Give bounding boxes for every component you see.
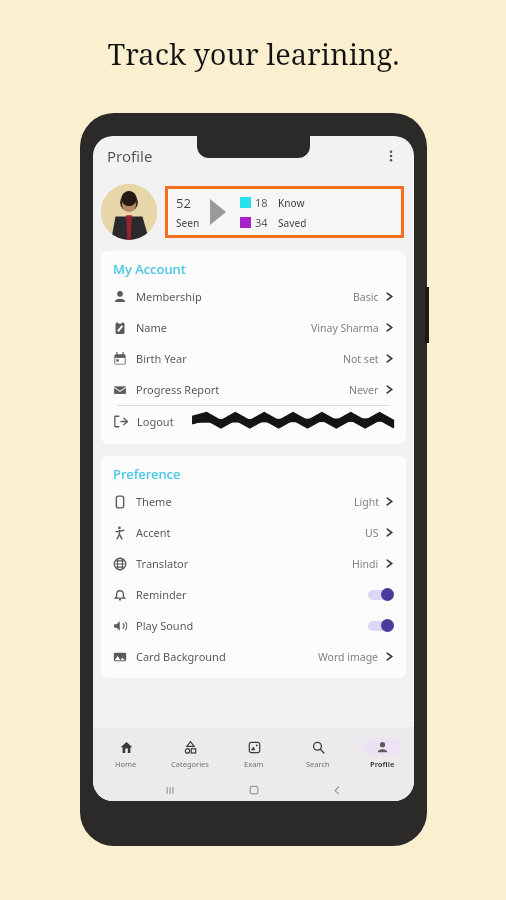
staticText: Birth Year xyxy=(136,351,187,366)
staticText: Preference xyxy=(113,465,181,483)
staticText: Name xyxy=(136,320,168,335)
staticText: Accent xyxy=(136,525,171,540)
staticText: Track your learining. xyxy=(107,34,400,73)
button[interactable]: Membership xyxy=(113,281,394,312)
staticText: Know xyxy=(278,196,305,210)
staticText: 34 xyxy=(255,215,268,230)
staticText: 18 xyxy=(255,195,268,210)
staticText: US xyxy=(365,526,379,540)
button[interactable]: More options xyxy=(378,143,404,169)
staticText: Translator xyxy=(136,556,189,571)
staticText: Play Sound xyxy=(136,618,194,633)
button[interactable]: Reminder xyxy=(113,579,394,610)
button[interactable]: Accent xyxy=(113,517,394,548)
staticText: Word image xyxy=(318,650,379,664)
button[interactable]: Translator xyxy=(113,548,394,579)
staticText: Profile xyxy=(107,146,153,166)
staticText: Exam xyxy=(244,759,264,769)
staticText: Categories xyxy=(171,759,209,769)
staticText: Card Background xyxy=(136,649,226,664)
staticText: Theme xyxy=(136,494,172,509)
button[interactable]: Profile photo xyxy=(101,184,157,240)
button[interactable]: Card Background xyxy=(113,641,394,672)
staticText: Reminder xyxy=(136,587,187,602)
staticText: Never xyxy=(349,383,379,397)
button[interactable]: Search xyxy=(286,727,350,779)
button[interactable]: Profile xyxy=(350,727,414,779)
staticText: My Account xyxy=(113,260,186,278)
staticText: Logout xyxy=(137,414,174,429)
button[interactable]: Theme xyxy=(113,486,394,517)
staticText: Home xyxy=(115,759,137,769)
staticText: Progress Report xyxy=(136,382,220,397)
button[interactable]: Play Sound xyxy=(113,610,394,641)
button[interactable]: Exam xyxy=(222,727,286,779)
staticText: 52 xyxy=(176,194,191,212)
staticText: Light xyxy=(354,495,379,509)
staticText: Saved xyxy=(278,216,307,230)
button[interactable]: Logout xyxy=(113,406,394,436)
button[interactable]: Name xyxy=(113,312,394,343)
staticText: Seen xyxy=(176,216,200,230)
staticText: Hindi xyxy=(352,557,379,571)
staticText: Basic xyxy=(353,290,379,304)
staticText: Membership xyxy=(136,289,202,304)
staticText: Not set xyxy=(343,352,379,366)
staticText: Profile xyxy=(370,759,395,769)
staticText: Vinay Sharma xyxy=(311,321,379,335)
button[interactable]: Birth Year xyxy=(113,343,394,374)
button[interactable]: Home xyxy=(93,727,158,779)
button[interactable]: Progress Report xyxy=(113,374,394,405)
button[interactable]: 52 xyxy=(168,189,401,235)
button[interactable]: Categories xyxy=(158,727,222,779)
staticText: Search xyxy=(306,759,330,769)
